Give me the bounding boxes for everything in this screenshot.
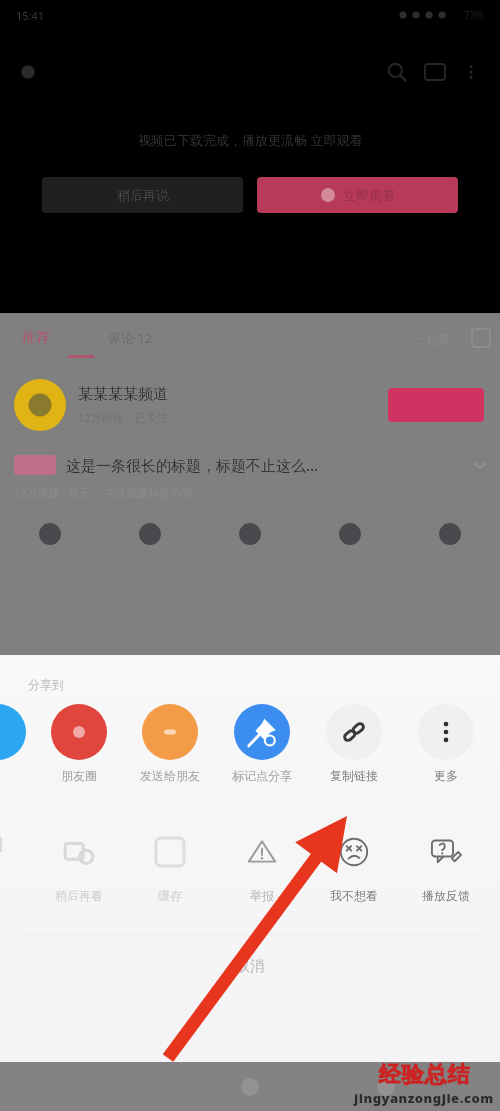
staticText: 取消 — [235, 957, 265, 976]
button[interactable]: 复制链接 — [318, 704, 390, 783]
button[interactable]: Back — [12, 56, 44, 88]
button[interactable]: 我不想看 — [318, 824, 390, 903]
button[interactable]: 稍后再说 — [42, 177, 243, 213]
staticText: 更多 — [434, 768, 458, 783]
staticText: 发送给朋友 — [140, 768, 200, 783]
staticText: 举报 — [250, 888, 274, 903]
staticText: 播放反馈 — [422, 888, 470, 903]
staticText: 我不想看 — [330, 888, 378, 903]
button[interactable]: 取消 — [0, 935, 500, 997]
button[interactable]: 朋友圈 — [43, 704, 115, 783]
button[interactable]: 分享 — [400, 521, 500, 568]
staticText: 稍后再看 — [55, 888, 103, 903]
staticText: 稍后再说 — [117, 187, 169, 203]
staticText: 12万播放 · 前天 · 关注话题标签内容 — [14, 485, 193, 500]
button[interactable] — [388, 388, 484, 422]
staticText: 标记点分享 — [232, 768, 292, 783]
staticText: 评论 12 — [108, 329, 153, 347]
staticText: 这是一条很长的标题，标题不止这么… — [66, 455, 319, 475]
staticText: 分享到 — [28, 677, 64, 692]
staticText: 73% — [464, 8, 484, 22]
staticText: 视频已下载完成，播放更流畅 立即观看 — [138, 131, 363, 149]
staticText: 立即观看 — [343, 187, 395, 203]
staticText: 经验总结 — [378, 1061, 470, 1089]
button[interactable]: 播放反馈 — [410, 824, 482, 903]
button[interactable]: 缓存 — [134, 824, 206, 903]
button[interactable]: 点赞 — [0, 521, 100, 568]
button[interactable]: 举报 — [226, 824, 298, 903]
button[interactable]: More options — [454, 55, 488, 89]
staticText: 12万粉丝 已关注 — [78, 410, 169, 425]
button[interactable]: 不喜欢 — [100, 521, 200, 568]
button[interactable]: Share option — [0, 704, 34, 760]
button[interactable]: Cast — [416, 53, 454, 91]
staticText: 某某某某频道 — [78, 385, 168, 404]
button[interactable]: 标记点分享 — [226, 704, 298, 783]
button[interactable]: 发送给朋友 — [134, 704, 206, 783]
staticText: 朋友圈 — [61, 768, 97, 783]
staticText: 缓存 — [158, 888, 182, 903]
button[interactable]: 评论 — [200, 521, 300, 568]
staticText: 推荐 — [22, 329, 50, 347]
staticText: 复制链接 — [330, 768, 378, 783]
staticText: jingyanzongjie.com — [354, 1089, 494, 1107]
staticText: 15:41 — [16, 8, 45, 23]
button[interactable]: 立即观看 — [257, 177, 458, 213]
button[interactable]: 更多 — [410, 704, 482, 783]
button[interactable]: Recents — [364, 1065, 408, 1109]
button[interactable]: Share option — [0, 824, 38, 880]
button[interactable]: 稍后再看 — [43, 824, 115, 903]
button[interactable]: Search — [378, 53, 416, 91]
button[interactable]: Home — [228, 1065, 272, 1109]
button[interactable]: 收藏 — [300, 521, 400, 568]
